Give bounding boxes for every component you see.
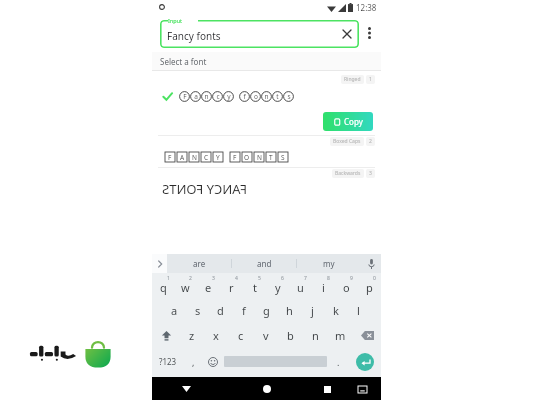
- button[interactable]: More options: [361, 25, 377, 41]
- button[interactable]: n: [303, 323, 328, 348]
- button[interactable]: my: [297, 254, 361, 273]
- button[interactable]: j: [301, 298, 324, 323]
- staticText: b: [287, 328, 294, 343]
- button[interactable]: Backspace: [353, 323, 381, 348]
- button[interactable]: 1: [152, 273, 174, 298]
- button[interactable]: 3: [197, 273, 220, 298]
- button[interactable]: FANCY FONTS: [152, 179, 381, 199]
- button[interactable]: m: [328, 323, 353, 348]
- staticText: q: [160, 280, 167, 295]
- staticText: y: [227, 92, 231, 101]
- staticText: 5: [258, 275, 261, 282]
- button[interactable]: z: [180, 323, 204, 348]
- staticText: S: [281, 153, 285, 162]
- staticText: Fancy fonts: [167, 29, 221, 43]
- staticText: d: [217, 303, 224, 318]
- button[interactable]: b: [278, 323, 303, 348]
- staticText: p: [366, 280, 373, 295]
- staticText: ,: [192, 356, 195, 368]
- button[interactable]: Enter: [349, 348, 381, 375]
- staticText: e: [205, 280, 212, 295]
- staticText: c: [238, 328, 244, 343]
- staticText: f: [243, 92, 246, 101]
- staticText: Select a font: [160, 56, 207, 67]
- staticText: C: [204, 153, 209, 162]
- staticText: Boxed Caps: [333, 138, 361, 145]
- button[interactable]: f: [232, 298, 255, 323]
- button[interactable]: 5: [243, 273, 266, 298]
- staticText: n: [204, 92, 209, 101]
- staticText: t: [276, 92, 279, 101]
- staticText: 7: [304, 275, 307, 282]
- button[interactable]: ,: [184, 348, 202, 375]
- button[interactable]: s: [186, 298, 209, 323]
- staticText: 0: [373, 275, 376, 282]
- staticText: a: [194, 92, 198, 101]
- staticText: c: [216, 92, 220, 101]
- staticText: 8: [327, 275, 330, 282]
- staticText: my: [323, 258, 335, 269]
- staticText: ?123: [159, 356, 177, 367]
- button[interactable]: Expand suggestions: [152, 254, 167, 273]
- button[interactable]: 9: [335, 273, 358, 298]
- button[interactable]: are: [167, 254, 231, 273]
- staticText: x: [213, 328, 219, 343]
- button[interactable]: 0: [358, 273, 381, 298]
- button[interactable]: ?123: [152, 348, 184, 375]
- staticText: 6: [281, 275, 284, 282]
- staticText: w: [181, 280, 190, 295]
- button[interactable]: Select a font: [152, 52, 381, 70]
- button[interactable]: 2: [174, 273, 197, 298]
- staticText: are: [193, 258, 206, 269]
- staticText: t: [253, 280, 257, 295]
- button[interactable]: c: [228, 323, 253, 348]
- staticText: r: [229, 280, 234, 295]
- button[interactable]: Back: [178, 381, 194, 397]
- button[interactable]: Home: [259, 381, 275, 397]
- button[interactable]: Copy: [323, 112, 373, 131]
- button[interactable]: Shift: [152, 323, 180, 348]
- button[interactable]: 4: [220, 273, 243, 298]
- staticText: Copy: [344, 116, 363, 127]
- button[interactable]: .: [327, 348, 349, 375]
- button[interactable]: h: [278, 298, 301, 323]
- button[interactable]: 8: [312, 273, 335, 298]
- button[interactable]: x: [204, 323, 228, 348]
- button[interactable]: Clear: [340, 27, 354, 41]
- button[interactable]: v: [253, 323, 278, 348]
- staticText: F: [183, 92, 187, 101]
- staticText: 3: [212, 275, 215, 282]
- button[interactable]: 6: [266, 273, 289, 298]
- staticText: Input: [168, 17, 183, 24]
- staticText: O: [244, 153, 250, 162]
- button[interactable]: Cafe Bazaar: [8, 326, 133, 382]
- staticText: n: [312, 328, 319, 343]
- button[interactable]: d: [209, 298, 232, 323]
- staticText: 4: [235, 275, 238, 282]
- staticText: i: [322, 280, 325, 295]
- button[interactable]: F: [152, 85, 381, 107]
- staticText: 3: [369, 170, 372, 177]
- staticText: .: [337, 356, 340, 368]
- button[interactable]: Fancy fonts: [160, 20, 359, 48]
- staticText: F: [233, 153, 237, 162]
- staticText: 2: [189, 275, 192, 282]
- button[interactable]: Recent apps: [319, 381, 335, 397]
- button[interactable]: Switch keyboard: [355, 382, 369, 396]
- button[interactable]: a: [163, 298, 186, 323]
- button[interactable]: 7: [289, 273, 312, 298]
- button[interactable]: Emoji: [202, 348, 224, 375]
- staticText: and: [257, 258, 272, 269]
- button[interactable]: F: [152, 147, 381, 167]
- button[interactable]: and: [232, 254, 296, 273]
- staticText: j: [311, 303, 314, 318]
- staticText: m: [335, 328, 346, 343]
- staticText: 9: [350, 275, 353, 282]
- staticText: N: [192, 153, 197, 162]
- button[interactable]: g: [255, 298, 278, 323]
- button[interactable]: Voice input: [361, 254, 381, 273]
- staticText: v: [263, 328, 269, 343]
- button[interactable]: l: [347, 298, 370, 323]
- button[interactable]: k: [324, 298, 347, 323]
